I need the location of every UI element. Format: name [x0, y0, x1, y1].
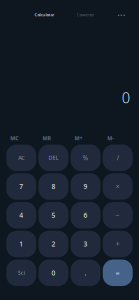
button[interactable]: MC [0, 134, 29, 143]
staticText: × [116, 182, 120, 191]
button[interactable]: 0 [38, 259, 68, 286]
staticText: % [83, 153, 89, 162]
button[interactable]: × [103, 173, 133, 200]
button[interactable]: 4 [6, 202, 36, 228]
button[interactable]: . [71, 259, 101, 286]
button[interactable]: 3 [71, 231, 101, 257]
button[interactable]: 9 [71, 173, 101, 200]
staticText: = [116, 268, 120, 277]
button[interactable]: 5 [38, 202, 68, 228]
button[interactable]: 2 [38, 231, 68, 257]
staticText: 9 [84, 182, 88, 191]
staticText: 6 [84, 211, 88, 220]
button[interactable]: = [103, 259, 133, 286]
button[interactable]: M+ [64, 134, 94, 143]
button[interactable]: AC [6, 144, 36, 171]
button[interactable]: 1 [6, 231, 36, 257]
button[interactable]: 8 [38, 173, 68, 200]
staticText: 7 [19, 182, 23, 191]
staticText: 1 [19, 240, 23, 248]
staticText: MR [42, 135, 50, 142]
staticText: AC [18, 154, 24, 161]
button[interactable]: Calculator [30, 10, 58, 20]
button[interactable]: DEL [38, 144, 68, 171]
staticText: Calculator [34, 12, 54, 17]
button[interactable]: − [103, 202, 133, 228]
staticText: 4 [19, 211, 23, 220]
button[interactable]: 7 [6, 173, 36, 200]
staticText: 2 [51, 240, 55, 248]
staticText: − [116, 211, 120, 220]
staticText: . [85, 268, 87, 277]
staticText: 0 [122, 88, 130, 107]
button[interactable]: + [103, 231, 133, 257]
staticText: M- [107, 135, 114, 142]
button[interactable]: Sci [6, 259, 36, 286]
staticText: 8 [51, 182, 55, 191]
staticText: / [117, 153, 119, 162]
staticText: 3 [84, 240, 88, 248]
button[interactable]: % [71, 144, 101, 171]
button[interactable]: Converter [71, 10, 99, 20]
staticText: MC [10, 135, 18, 142]
staticText: 5 [51, 211, 55, 220]
button[interactable]: 6 [71, 202, 101, 228]
staticText: DEL [48, 154, 58, 161]
button[interactable]: More options [114, 9, 128, 21]
staticText: Converter [76, 12, 94, 17]
button[interactable]: / [103, 144, 133, 171]
staticText: 0 [51, 268, 55, 277]
button[interactable]: MR [31, 134, 61, 143]
staticText: M+ [75, 135, 83, 142]
staticText: Sci [18, 269, 25, 276]
button[interactable]: M- [96, 134, 126, 143]
staticText: + [116, 240, 120, 248]
